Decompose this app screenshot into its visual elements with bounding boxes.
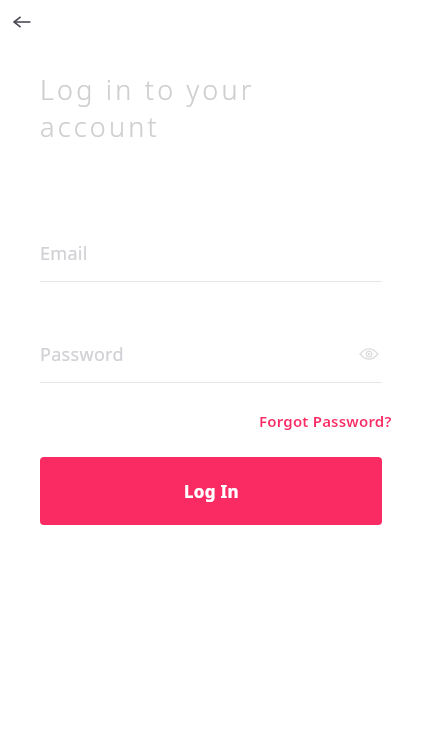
staticText: Forgot Password? [259,411,392,431]
button[interactable]: Log In [40,457,382,525]
button[interactable]: Password [40,336,382,372]
staticText: Password [40,342,124,367]
staticText: Log In [184,480,239,503]
button[interactable]: Forgot Password? [259,407,392,435]
staticText: Email [40,241,88,266]
staticText: Log in to your [40,71,255,108]
button[interactable]: Email [40,235,382,282]
staticText: account [40,108,160,145]
button[interactable]: Show password [356,341,382,367]
button[interactable]: Back [6,6,38,38]
